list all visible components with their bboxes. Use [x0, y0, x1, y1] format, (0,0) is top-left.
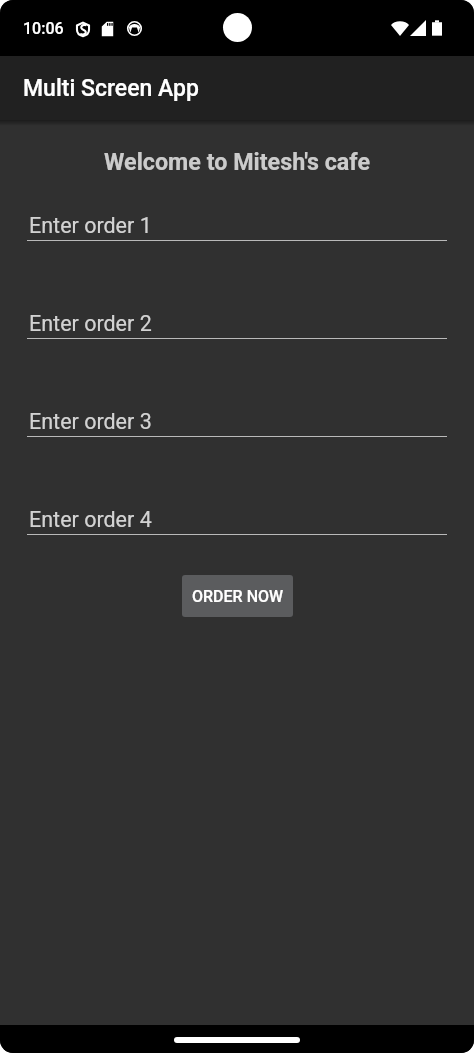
button[interactable]: Enter order 3	[27, 409, 447, 437]
other: SD card	[101, 21, 114, 37]
staticText: Enter order 4	[29, 507, 152, 532]
button[interactable]: Enter order 2	[27, 311, 447, 339]
button[interactable]: Home	[174, 1037, 300, 1043]
staticText: ORDER NOW	[192, 587, 284, 606]
other: Mobile signal	[410, 20, 426, 36]
other: Notification	[127, 21, 142, 36]
other: Battery	[432, 20, 442, 36]
button[interactable]: Enter order 1	[27, 213, 447, 241]
staticText: Enter order 1	[29, 213, 152, 238]
other: Wi-Fi	[391, 20, 409, 36]
button[interactable]: Enter order 4	[27, 507, 447, 535]
staticText: Welcome to Mitesh's cafe	[0, 148, 474, 175]
staticText: 10:06	[23, 19, 64, 38]
button[interactable]: Multi Screen App	[0, 56, 474, 120]
other: Security	[76, 21, 90, 37]
staticText: Multi Screen App	[23, 75, 199, 102]
staticText: Enter order 2	[29, 311, 152, 336]
button[interactable]: ORDER NOW	[182, 575, 293, 617]
staticText: Enter order 3	[29, 409, 152, 434]
